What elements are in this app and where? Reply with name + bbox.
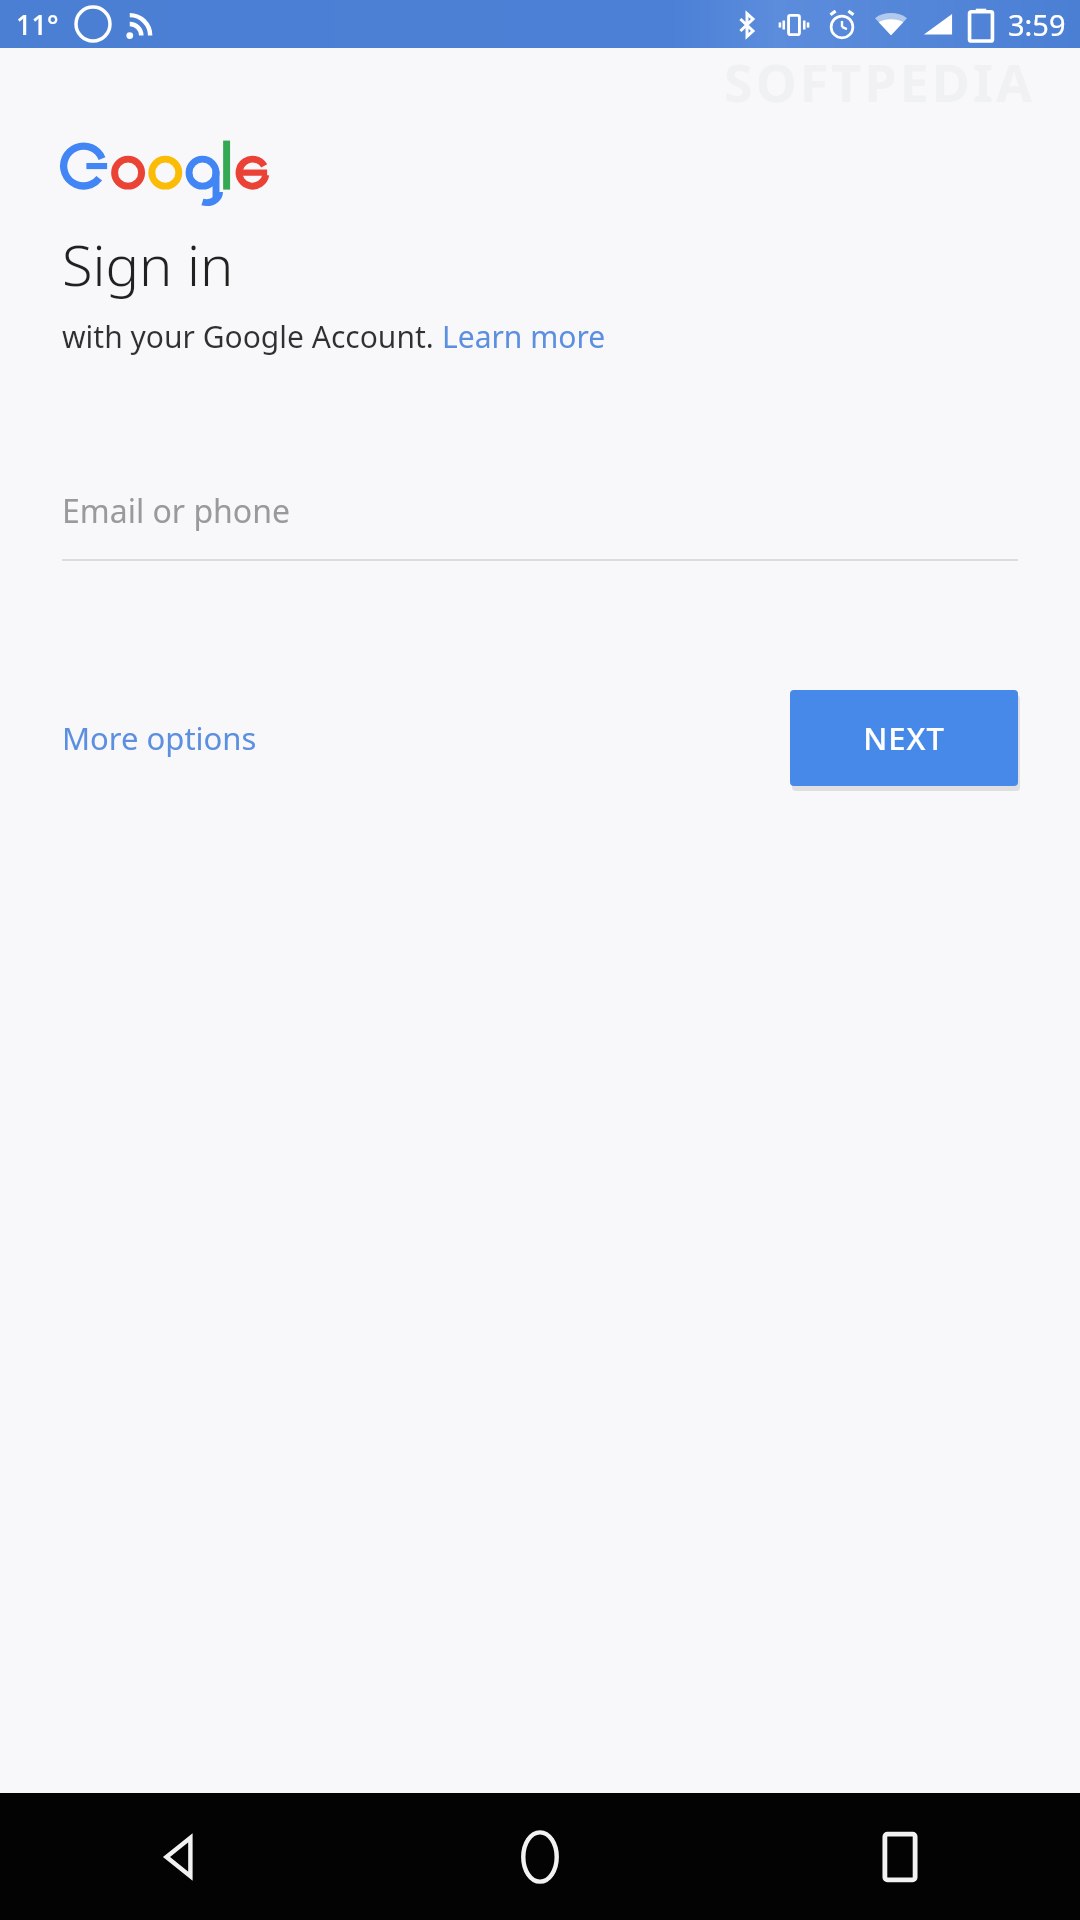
staticText: NEXT [863, 717, 945, 759]
button[interactable]: Home [360, 1793, 720, 1920]
staticText: Sign in [62, 226, 234, 302]
staticText: 3:59 [1008, 5, 1066, 44]
button[interactable]: Back [0, 1793, 360, 1920]
button[interactable]: Learn more [442, 316, 606, 357]
button[interactable]: Email or phone [62, 489, 1018, 561]
button[interactable]: More options [62, 709, 257, 767]
button[interactable]: NEXT [790, 690, 1018, 786]
button[interactable]: Recent apps [720, 1793, 1080, 1920]
staticText: 11° [16, 6, 59, 43]
staticText: Learn more [442, 316, 606, 357]
staticText: Email or phone [62, 489, 291, 533]
staticText: with your Google Account. [62, 316, 442, 357]
staticText: SOFTPEDIA [724, 46, 1036, 117]
staticText: More options [62, 717, 257, 759]
